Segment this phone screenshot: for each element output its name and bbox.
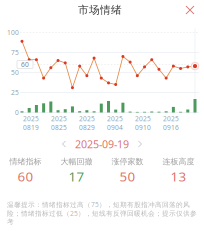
staticText: 0829 [79,123,95,132]
staticText: 13 [170,168,186,185]
staticText: 0819 [23,123,39,132]
staticText: 25 [11,88,19,97]
staticText: 情绪指标 [9,157,41,166]
staticText: 2025-09-19 [75,137,129,151]
button[interactable]: Close [180,0,200,20]
staticText: 0916 [163,123,179,132]
staticText: 60 [21,60,29,69]
staticText: 0 [15,108,19,117]
staticText: 连板高度 [162,157,194,166]
staticText: 60 [17,168,33,185]
staticText: 市场情绪 [78,3,122,16]
button[interactable]: Previous day [58,138,70,150]
staticText: 0825 [51,123,67,132]
staticText: 0904 [107,123,123,132]
staticText: 17 [68,168,84,185]
staticText: 涨停家数 [111,157,143,166]
staticText: 温馨提示：情绪指标过高（75），短期有股指冲高回落的风险；情绪指标过低（25），… [7,200,197,226]
staticText: 大幅回撤 [60,157,92,166]
staticText: 50 [11,68,19,77]
staticText: 2025 [51,114,67,123]
staticText: 2025 [135,114,151,123]
staticText: 2025 [79,114,95,123]
staticText: 75 [11,48,19,57]
staticText: 2025 [23,114,39,123]
staticText: 2025 [107,114,123,123]
staticText: 100 [7,28,19,37]
staticText: 0910 [135,123,151,132]
staticText: 2025 [163,114,179,123]
staticText: 50 [119,168,135,185]
button[interactable]: Next day [134,138,146,150]
